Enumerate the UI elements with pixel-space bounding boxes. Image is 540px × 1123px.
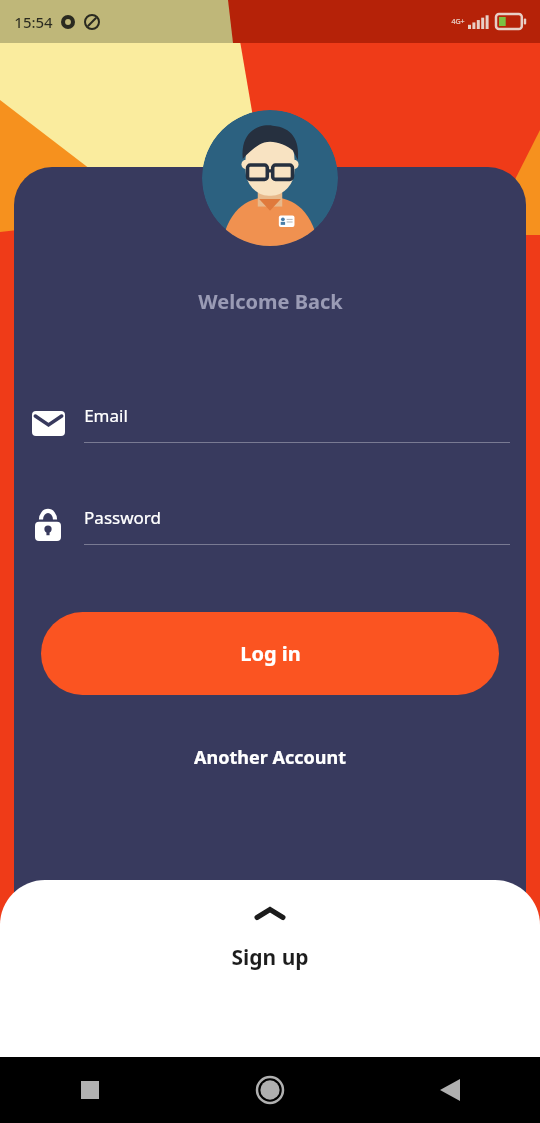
button[interactable]: Log in [41, 612, 499, 695]
staticText: 4G+ [451, 17, 465, 27]
button[interactable]: Expand sign up [0, 880, 540, 1057]
staticText: Sign up [231, 943, 309, 972]
button[interactable]: Email [0, 393, 540, 453]
button[interactable]: Another Account [0, 737, 540, 777]
staticText: Welcome Back [198, 288, 343, 315]
other: Password [35, 509, 61, 541]
staticText: Log in [240, 640, 301, 667]
staticText: Email [84, 404, 128, 427]
staticText: Password [84, 506, 161, 529]
staticText: 15:54 [14, 12, 53, 32]
button[interactable]: Back [360, 1057, 540, 1123]
button[interactable]: Password [0, 495, 540, 555]
other: Expand sign up [257, 907, 283, 921]
button[interactable]: Home [180, 1057, 360, 1123]
other: Email [32, 411, 65, 436]
button[interactable]: Recents [0, 1057, 180, 1123]
staticText: Another Account [194, 745, 346, 770]
